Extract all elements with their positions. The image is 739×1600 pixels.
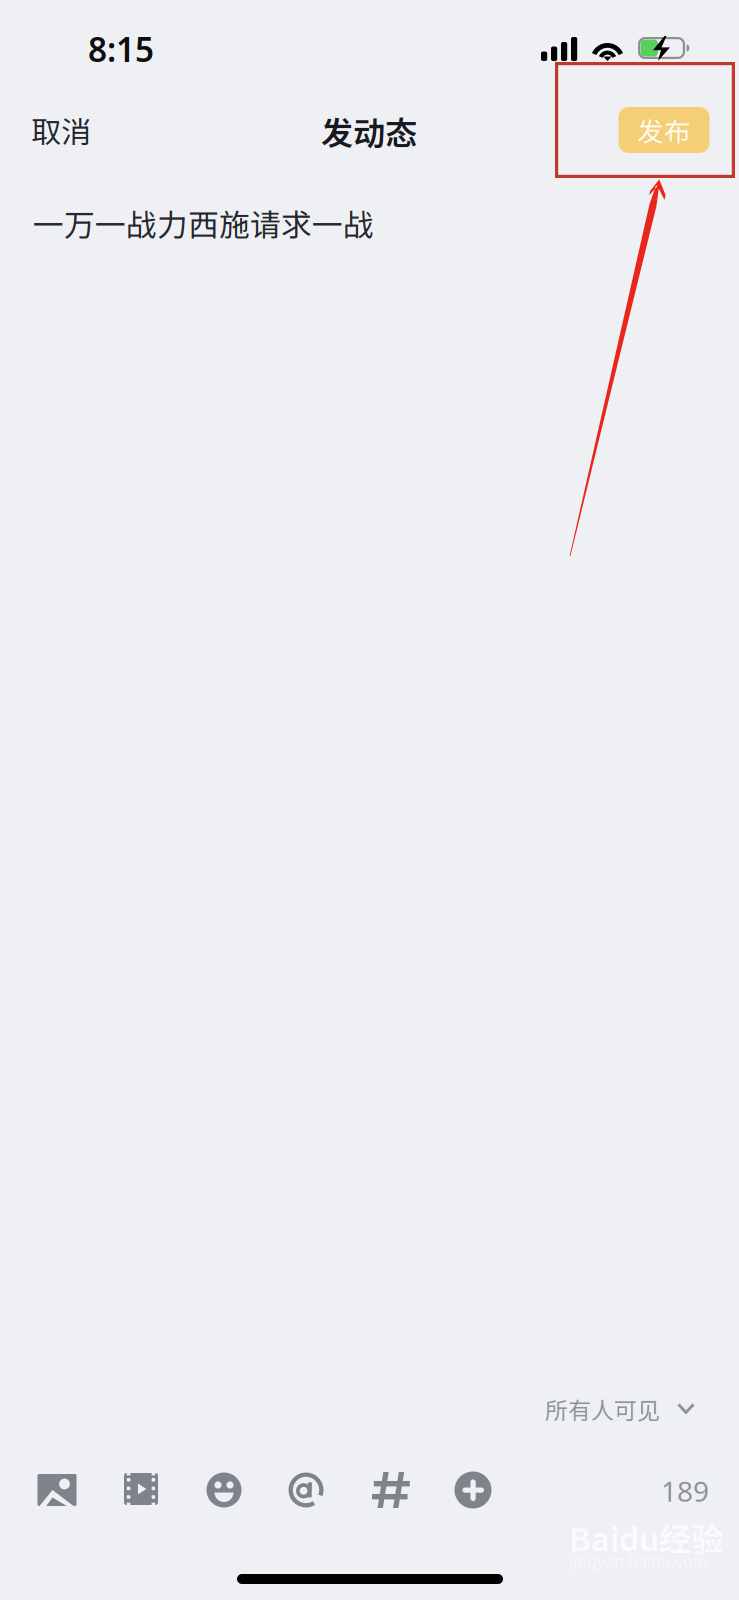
button[interactable]: Add photo bbox=[21, 1454, 93, 1526]
staticText: 发布 bbox=[637, 111, 691, 149]
button[interactable]: 所有人可见 bbox=[545, 1383, 739, 1435]
button[interactable]: Add topic bbox=[355, 1454, 427, 1526]
staticText: 发动态 bbox=[321, 108, 417, 154]
button[interactable]: 发布 bbox=[618, 107, 709, 153]
button[interactable]: Add video bbox=[105, 1453, 177, 1525]
staticText: 189 bbox=[661, 1472, 709, 1510]
staticText: 一万一战力西施请求一战 bbox=[33, 201, 374, 245]
staticText: 8:15 bbox=[88, 27, 154, 71]
button[interactable]: Emoji bbox=[188, 1454, 260, 1526]
staticText: 取消 bbox=[31, 108, 91, 152]
staticText: 所有人可见 bbox=[545, 1392, 660, 1426]
button[interactable]: Mention someone bbox=[270, 1454, 342, 1526]
button[interactable]: More options bbox=[437, 1454, 509, 1526]
button[interactable]: 取消 bbox=[1, 90, 121, 170]
staticText: jingyan.baidu.com bbox=[569, 1550, 708, 1572]
staticText: Baidu经验 bbox=[569, 1514, 723, 1560]
